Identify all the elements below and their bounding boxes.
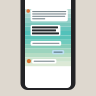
- button[interactable]: [31, 9, 68, 21]
- button[interactable]: [52, 50, 64, 54]
- button[interactable]: [31, 41, 61, 46]
- button[interactable]: [32, 59, 56, 63]
- button[interactable]: [31, 25, 60, 36]
